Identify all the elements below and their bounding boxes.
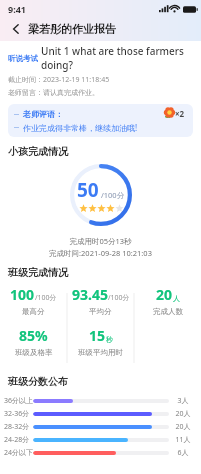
staticText: 老师评语： [23,109,63,119]
staticText: 截止时间：2023-12-19 11:18:45 [8,75,110,85]
staticText: 完成时间:2021-09-28 10:21:03 [0,248,201,258]
staticText: 20人 [169,422,197,432]
staticText: Unit 1 what are those farmers doing? [41,44,201,72]
staticText: 15 [89,326,106,345]
staticText: ×2 [175,108,185,119]
staticText: 6人 [169,448,197,458]
button[interactable]: 93.45 [67,285,134,316]
staticText: 班级完成情况 [8,266,68,279]
staticText: 听说考试 [8,54,38,63]
button[interactable]: Back [6,19,26,39]
staticText: 班级平均用时 [78,348,123,357]
staticText: 完成人数 [153,307,183,316]
staticText: /100分 [101,190,125,200]
staticText: 36分以上 [4,396,33,406]
staticText: 3人 [169,396,197,406]
staticText: 85% [19,326,48,345]
button[interactable]: 36分以上 [4,394,197,407]
staticText: 最高分 [22,307,45,316]
staticText: 11人 [169,435,197,445]
staticText: 作业完成得非常棒，继续加油哦! [23,122,138,133]
staticText: 50 [77,177,99,203]
staticText: 秒 [106,335,113,344]
staticText: 32-36分 [4,409,33,419]
staticText: 20人 [169,409,197,419]
staticText: 平均分 [89,307,112,316]
button[interactable]: 24-28分 [4,433,197,446]
staticText: 9:41 [8,3,26,15]
button[interactable]: 28-32分 [4,420,197,433]
button[interactable]: 100 [0,285,67,316]
staticText: 完成用时05分13秒 [0,236,201,246]
staticText: 老师留言：请认真完成作业。 [8,88,99,97]
staticText: 班级及格率 [15,348,53,357]
button[interactable]: 24分以下 [4,446,197,459]
staticText: 班级分数公布 [8,375,68,388]
staticText: 100 [10,285,35,304]
staticText: 24分以下 [4,448,33,458]
staticText: 小孩完成情况 [8,145,68,158]
staticText: /100分 [35,293,57,303]
staticText: 93.45 [72,285,108,304]
staticText: 28-32分 [4,422,33,432]
staticText: /100分 [108,293,130,303]
button[interactable]: 老师评语： [8,104,193,137]
button[interactable]: 15 [67,326,134,357]
staticText: 20 [156,285,173,304]
staticText: 梁若彤的作业报告 [28,22,116,36]
button[interactable]: 20 [134,285,201,316]
button[interactable]: 32-36分 [4,407,197,420]
button[interactable]: 85% [0,326,67,357]
staticText: 24-28分 [4,435,33,445]
staticText: 人 [173,294,180,303]
